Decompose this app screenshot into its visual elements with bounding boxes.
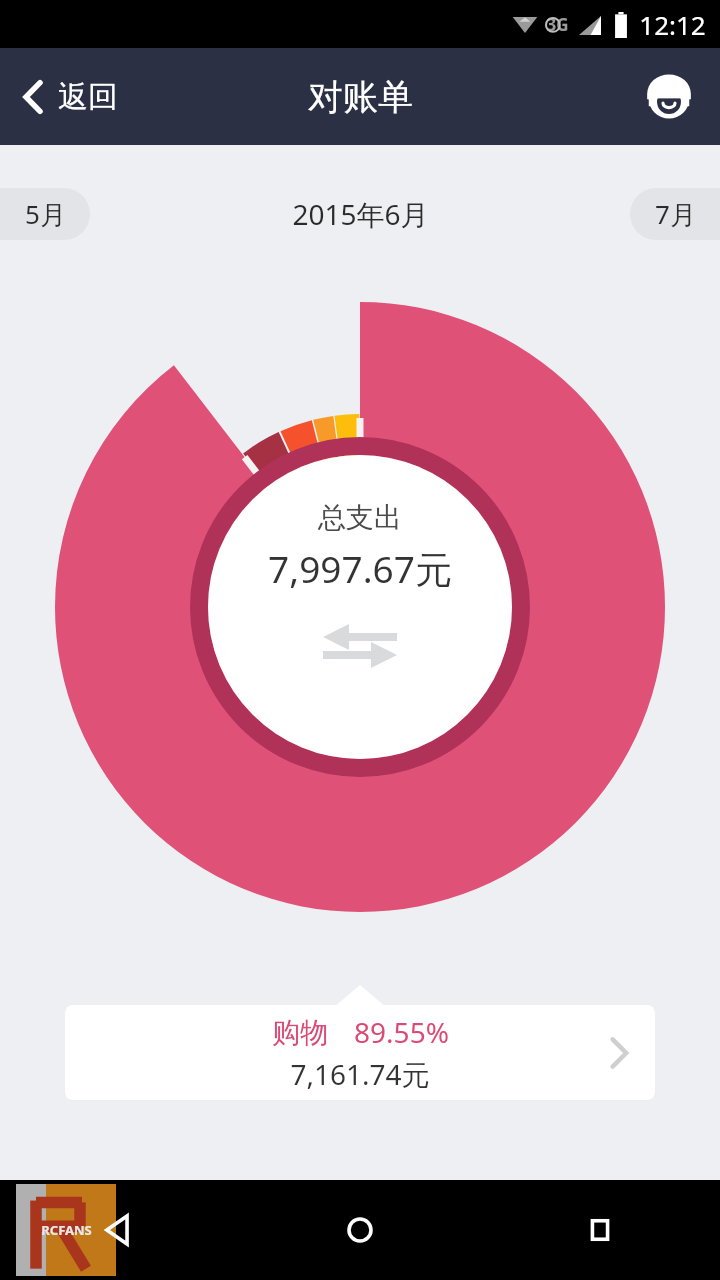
staticText: 12:12: [639, 7, 706, 42]
button[interactable]: Recents: [480, 1180, 720, 1280]
button[interactable]: 返回: [0, 68, 136, 126]
button[interactable]: Expense breakdown chart: [0, 282, 720, 1012]
staticText: 7,161.74元: [290, 1055, 430, 1093]
staticText: 3G: [546, 13, 569, 36]
staticText: 89.55%: [354, 1013, 449, 1051]
staticText: 对账单: [308, 75, 413, 119]
button[interactable]: 7月: [630, 188, 720, 240]
staticText: 总支出: [318, 500, 402, 535]
button[interactable]: 5月: [0, 188, 90, 240]
staticText: RCFANS: [41, 1221, 92, 1239]
button[interactable]: Back: [0, 1180, 240, 1280]
staticText: 5月: [25, 196, 66, 232]
staticText: 7月: [655, 196, 696, 232]
staticText: 购物: [272, 1015, 328, 1050]
button[interactable]: Profile: [640, 68, 698, 126]
button[interactable]: Home: [240, 1180, 480, 1280]
staticText: 7,997.67元: [268, 543, 452, 594]
button[interactable]: 购物: [65, 1005, 655, 1100]
staticText: 2015年6月: [292, 195, 429, 233]
staticText: 返回: [58, 78, 118, 116]
